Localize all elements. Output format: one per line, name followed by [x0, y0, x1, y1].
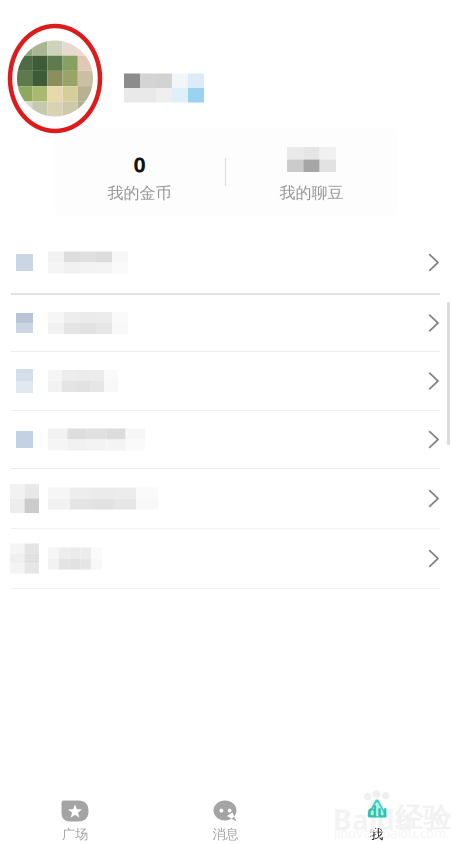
staticText: 我 [370, 826, 383, 842]
button[interactable]: 消息 [150, 790, 301, 844]
staticText: 经验 [395, 801, 451, 835]
staticText: 0 [133, 150, 145, 178]
staticText: 我的聊豆 [279, 183, 343, 203]
button[interactable]: Settings item [0, 352, 452, 410]
staticText: 广场 [62, 826, 88, 842]
staticText: jingyan.baidu.com [334, 824, 446, 842]
button[interactable]: Settings item [0, 232, 452, 293]
button[interactable]: Nickname [124, 73, 204, 102]
staticText: 我的金币 [107, 183, 171, 203]
button[interactable]: My coins [54, 127, 225, 217]
button[interactable]: Settings item [0, 529, 452, 588]
button[interactable]: 我 [301, 790, 452, 844]
staticText: Baidu [333, 801, 413, 838]
button[interactable]: Settings item [0, 411, 452, 468]
button[interactable]: 广场 [0, 790, 150, 844]
staticText: du [367, 800, 387, 822]
button[interactable]: My beans [226, 127, 397, 217]
staticText: 消息 [212, 826, 238, 842]
button[interactable]: Settings item [0, 469, 452, 528]
button[interactable]: Profile photo [17, 40, 93, 116]
button[interactable]: Settings item [0, 295, 452, 351]
